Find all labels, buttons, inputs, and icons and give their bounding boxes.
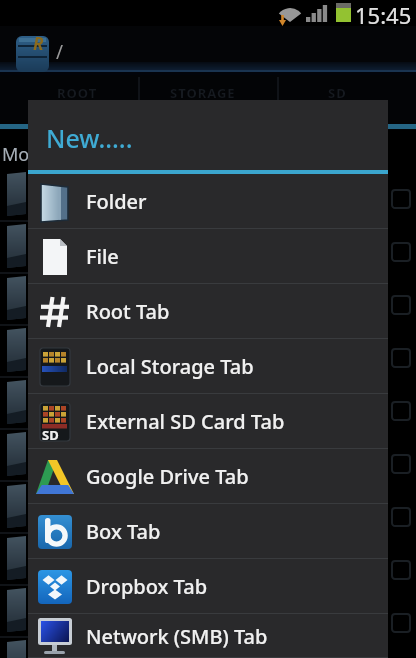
- staticText: Folder: [86, 188, 147, 215]
- button[interactable]: SD: [28, 394, 388, 449]
- button[interactable]: File: [28, 229, 388, 284]
- button[interactable]: Dropbox Tab: [28, 559, 388, 614]
- staticText: New.....: [46, 121, 133, 155]
- button[interactable]: Root Tab: [28, 284, 388, 339]
- staticText: SD: [42, 426, 59, 444]
- staticText: External SD Card Tab: [86, 408, 285, 435]
- staticText: Network (SMB) Tab: [86, 623, 268, 650]
- staticText: STORAGE: [170, 84, 236, 102]
- staticText: File: [86, 243, 119, 270]
- staticText: 15:45: [355, 0, 412, 26]
- staticText: Box Tab: [86, 518, 161, 545]
- button[interactable]: [0, 26, 80, 75]
- staticText: Moun: [2, 142, 52, 167]
- staticText: R: [33, 32, 44, 55]
- staticText: SD: [328, 84, 347, 102]
- staticText: Dropbox Tab: [86, 573, 208, 600]
- staticText: Google Drive Tab: [86, 463, 249, 490]
- button[interactable]: Folder: [28, 174, 388, 229]
- button[interactable]: Local Storage Tab: [28, 339, 388, 394]
- button[interactable]: Box Tab: [28, 504, 388, 559]
- button[interactable]: Google Drive Tab: [28, 449, 388, 504]
- staticText: /: [56, 39, 64, 65]
- staticText: Local Storage Tab: [86, 353, 254, 380]
- button[interactable]: Network (SMB) Tab: [28, 614, 388, 658]
- staticText: ROOT: [57, 84, 98, 102]
- staticText: Root Tab: [86, 298, 170, 325]
